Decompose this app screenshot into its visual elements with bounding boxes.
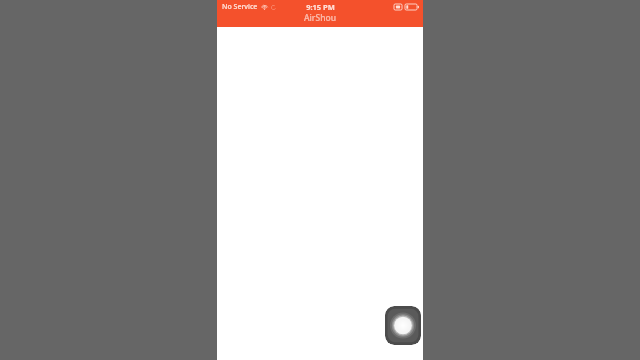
- staticText: No Service: [222, 2, 258, 12]
- staticText: AirShou: [304, 12, 336, 24]
- button[interactable]: AssistiveTouch: [385, 306, 421, 345]
- staticText: 9:15 PM: [306, 2, 335, 12]
